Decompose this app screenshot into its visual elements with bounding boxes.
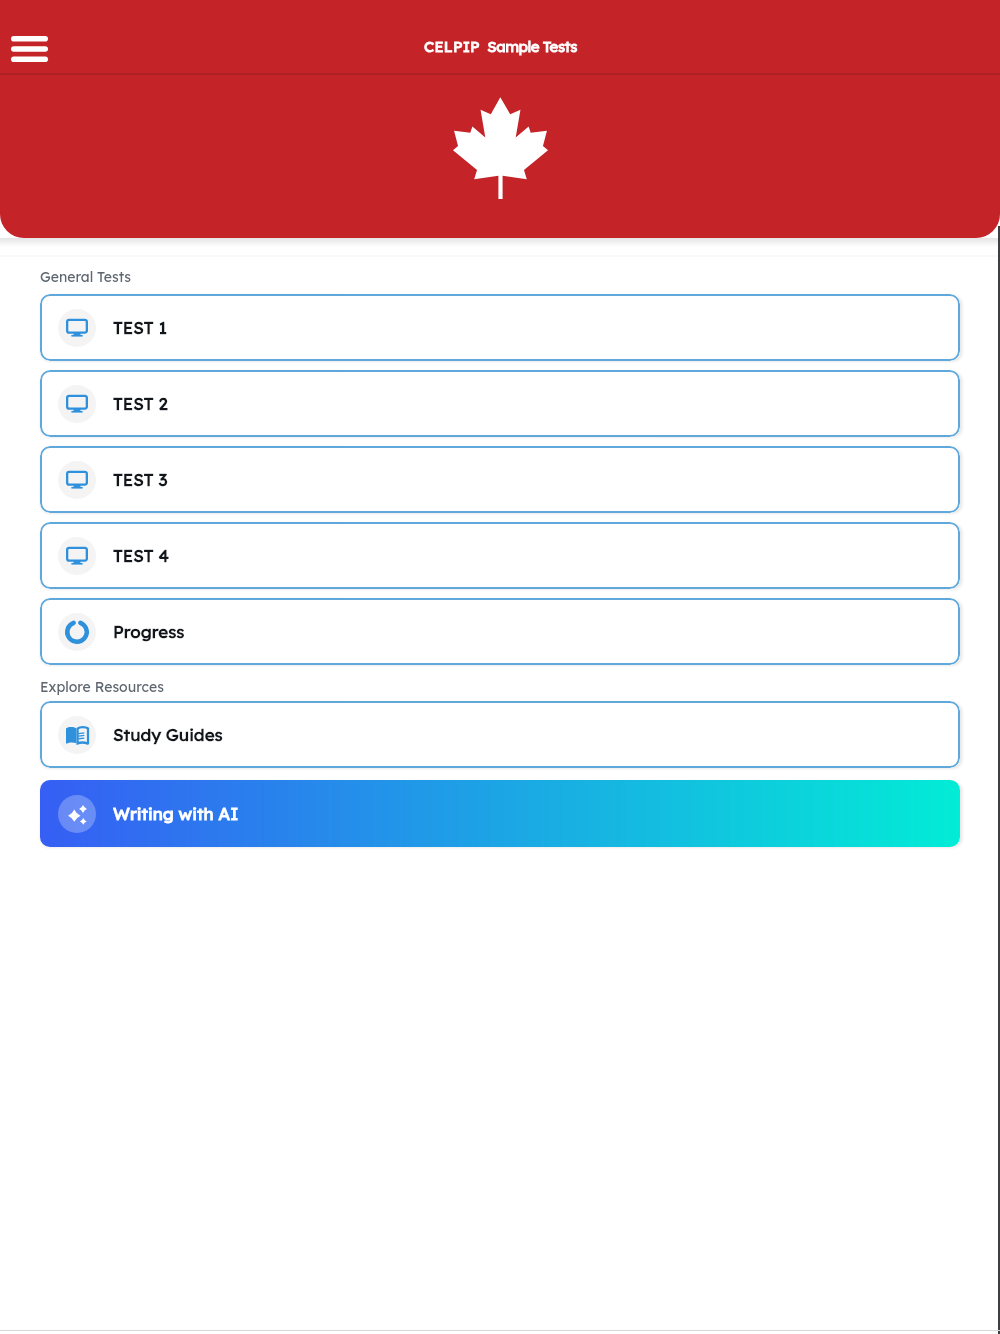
staticText: TEST 4 <box>113 545 169 566</box>
staticText: TEST 1 <box>113 317 167 338</box>
staticText: Writing with AI <box>113 803 239 824</box>
button[interactable]: Study Guides <box>40 701 960 768</box>
button[interactable]: TEST 2 <box>40 370 960 437</box>
button[interactable]: Progress <box>40 598 960 665</box>
staticText: Explore Resources <box>40 678 164 696</box>
button[interactable]: Writing with AI <box>40 780 960 847</box>
button[interactable]: TEST 3 <box>40 446 960 513</box>
staticText: Progress <box>113 621 185 642</box>
staticText: TEST 3 <box>113 469 168 490</box>
button[interactable]: Open navigation menu <box>0 20 58 78</box>
staticText: General Tests <box>40 268 132 286</box>
button[interactable]: TEST 1 <box>40 294 960 361</box>
staticText: Study Guides <box>113 724 223 745</box>
staticText: CELPIP Sample Tests <box>424 37 577 56</box>
staticText: TEST 2 <box>113 393 168 414</box>
button[interactable]: TEST 4 <box>40 522 960 589</box>
